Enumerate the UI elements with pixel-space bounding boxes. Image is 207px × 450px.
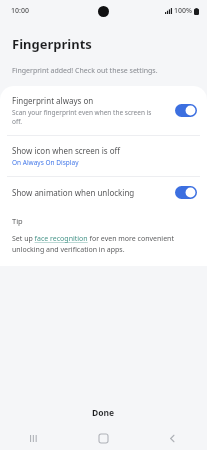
button[interactable]: Toggle on xyxy=(175,104,197,117)
staticText: On Always On Display xyxy=(12,158,79,167)
button[interactable]: Done xyxy=(0,400,207,426)
staticText: Show animation when unlocking xyxy=(12,187,135,198)
button[interactable]: Recents xyxy=(0,426,69,450)
staticText: Fingerprints xyxy=(12,35,92,53)
button[interactable]: Show icon when screen is off xyxy=(0,136,207,176)
button[interactable]: Back xyxy=(138,426,207,450)
staticText: 100% xyxy=(174,6,192,16)
staticText: Done xyxy=(92,407,115,419)
staticText: Fingerprint added! Check out these setti… xyxy=(12,66,158,76)
staticText: Scan your fingerprint even when the scre… xyxy=(12,108,161,126)
button[interactable]: Show animation when unlocking xyxy=(0,177,207,208)
button[interactable]: Toggle on xyxy=(175,186,197,199)
button[interactable]: Set up face recognition for even more co… xyxy=(12,234,193,254)
staticText: Tip xyxy=(12,216,23,226)
staticText: 10:00 xyxy=(11,6,29,16)
staticText: Fingerprint always on xyxy=(12,95,94,106)
staticText: Show icon when screen is off xyxy=(12,145,121,156)
button[interactable]: Fingerprint always on xyxy=(0,86,207,135)
button[interactable]: Home xyxy=(69,426,138,450)
